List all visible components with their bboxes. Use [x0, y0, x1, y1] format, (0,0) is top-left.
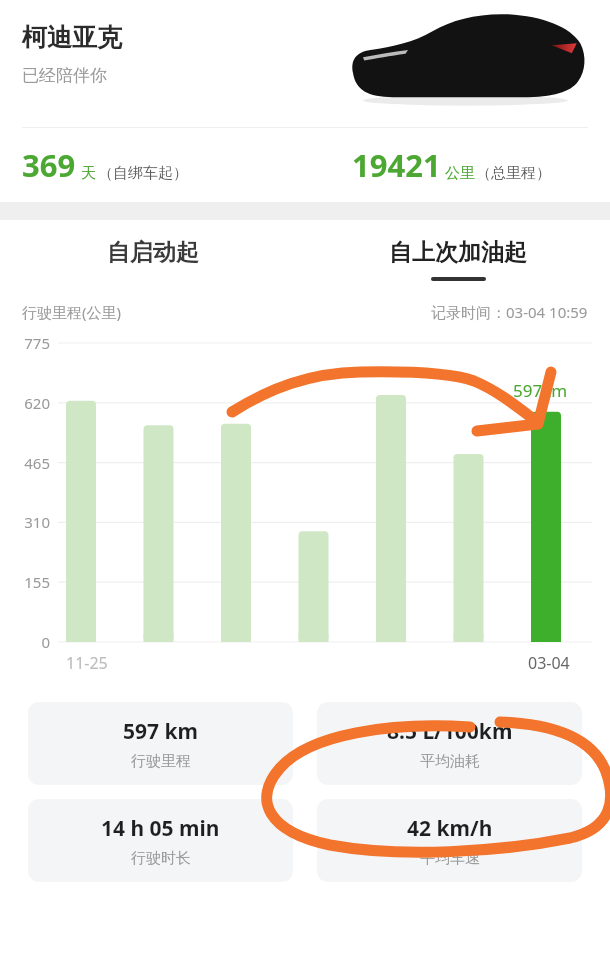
staticText: （总里程） — [476, 164, 551, 183]
staticText: 310 — [0, 512, 50, 532]
staticText: 已经陪伴你 — [22, 65, 107, 86]
button[interactable]: 14 h 05 min — [28, 799, 293, 882]
staticText: 620 — [0, 393, 50, 413]
staticText: 自启动起 — [107, 238, 199, 267]
staticText: 行驶里程 — [131, 752, 191, 771]
staticText: 597 km — [123, 717, 198, 746]
button[interactable]: 42 km/h — [317, 799, 582, 882]
staticText: 465 — [0, 453, 50, 473]
button[interactable]: 自上次加油起 — [305, 220, 610, 298]
staticText: 19421 — [352, 144, 441, 186]
staticText: 平均车速 — [420, 849, 480, 868]
staticText: 行驶里程(公里) — [22, 302, 122, 322]
staticText: 天 — [81, 164, 96, 183]
staticText: 42 km/h — [407, 814, 493, 843]
staticText: 14 h 05 min — [101, 814, 220, 843]
staticText: 记录时间：03-04 10:59 — [431, 302, 588, 322]
staticText: 8.5 L/100km — [387, 717, 513, 746]
button[interactable]: 8.5 L/100km — [317, 702, 582, 785]
staticText: （自绑车起） — [98, 164, 188, 183]
staticText: 平均油耗 — [420, 752, 480, 771]
staticText: 公里 — [445, 164, 475, 183]
staticText: 柯迪亚克 — [22, 22, 122, 53]
staticText: 369 — [22, 144, 76, 186]
button[interactable]: 597 km — [28, 702, 293, 785]
staticText: 自上次加油起 — [389, 238, 527, 267]
staticText: 155 — [0, 572, 50, 592]
staticText: 行驶时长 — [131, 849, 191, 868]
staticText: 775 — [0, 333, 50, 353]
staticText: 0 — [0, 632, 50, 652]
staticText: 11-25 — [66, 652, 108, 674]
other: Vehicle — [338, 8, 588, 113]
staticText: 03-04 — [528, 652, 570, 674]
button[interactable]: 自启动起 — [0, 220, 305, 298]
staticText: 597km — [513, 379, 568, 402]
